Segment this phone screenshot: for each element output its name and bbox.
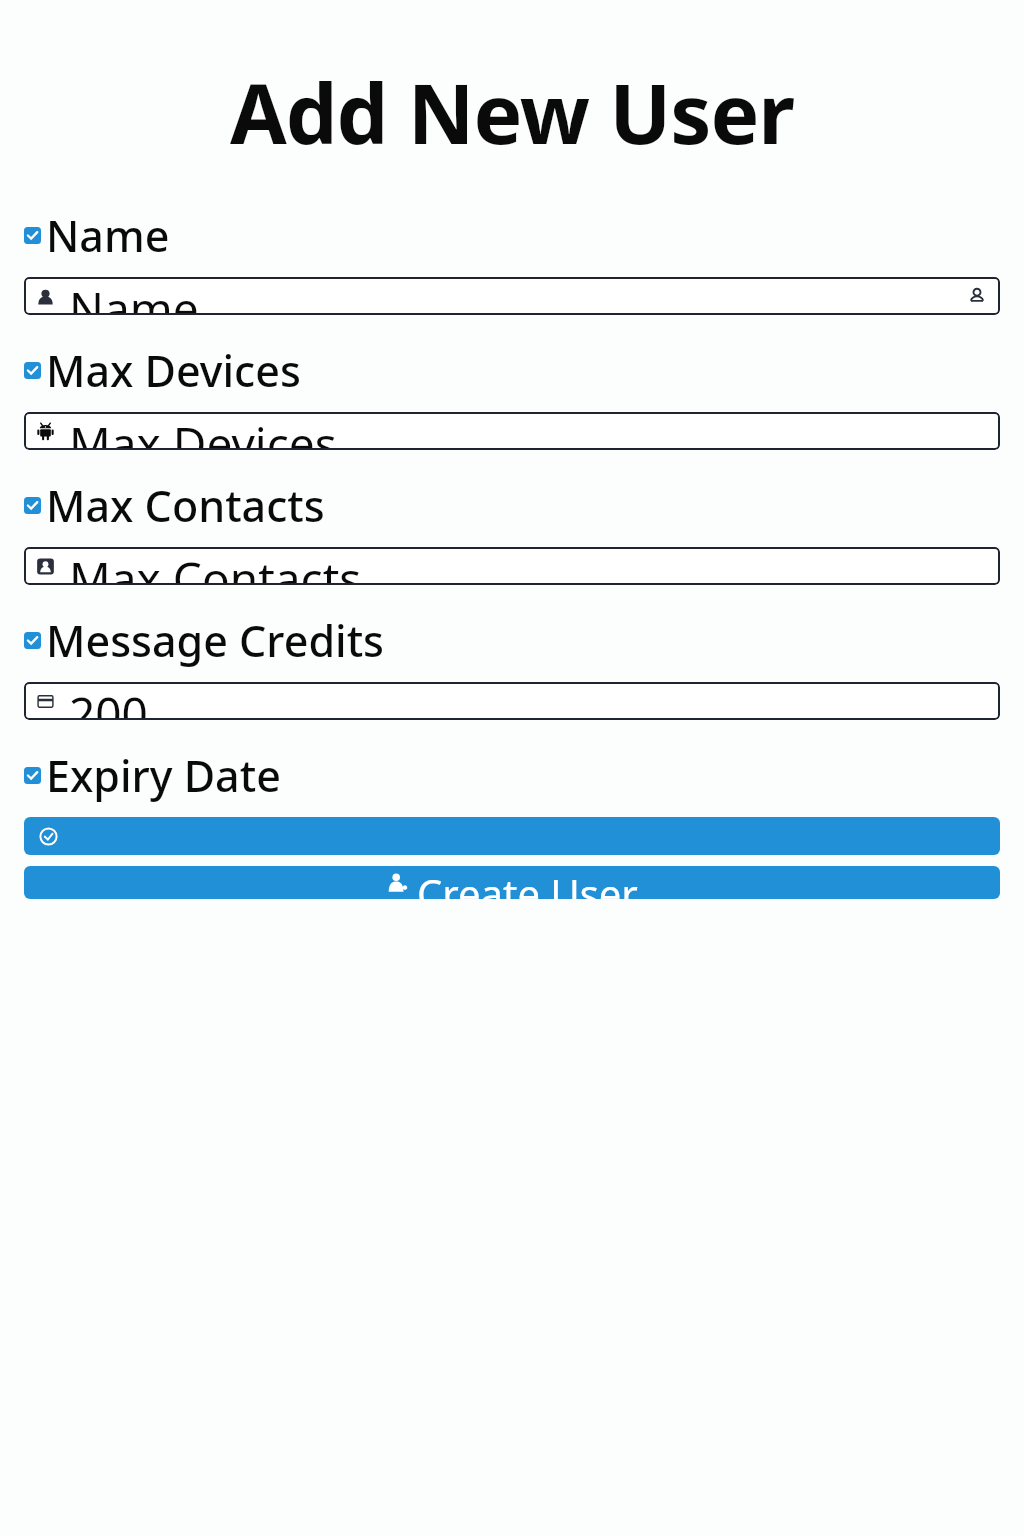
button[interactable]: Name	[24, 277, 1000, 315]
staticText: Max Devices	[46, 341, 301, 400]
staticText: Expiry Date	[46, 746, 281, 805]
other: Credits	[36, 692, 55, 711]
other: Name	[36, 287, 55, 306]
staticText: Name	[46, 206, 170, 265]
staticText: Add New User	[0, 56, 1024, 168]
other: Devices	[36, 422, 55, 441]
button[interactable]: Create User	[24, 866, 1000, 899]
staticText: Max Devices	[69, 412, 337, 450]
button[interactable]: Contacts	[24, 547, 1000, 585]
button[interactable]: Expiry Date	[24, 746, 1000, 805]
staticText: Message Credits	[46, 611, 385, 670]
button[interactable]: Credits	[24, 682, 1000, 720]
staticText: Name	[69, 277, 199, 315]
button[interactable]: Devices	[24, 412, 1000, 450]
staticText: Max Contacts	[46, 476, 325, 535]
button[interactable]: Max Devices	[24, 341, 1000, 400]
button[interactable]: Name	[24, 206, 1000, 265]
staticText: Create User	[417, 866, 638, 899]
button[interactable]: Select expiry date	[24, 817, 1000, 855]
button[interactable]: Max Contacts	[24, 476, 1000, 535]
staticText: 200	[69, 682, 148, 720]
other: Contacts	[36, 557, 55, 576]
other: Pick contact	[967, 286, 987, 306]
button[interactable]: Message Credits	[24, 611, 1000, 670]
staticText: Max Contacts	[69, 547, 362, 585]
